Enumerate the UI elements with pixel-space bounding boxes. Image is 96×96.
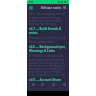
button[interactable]: Profile — [63, 6, 66, 9]
staticText: Settings — [60, 87, 68, 90]
staticText: We've been working hard on a new version… — [29, 12, 66, 25]
button[interactable]: Search — [38, 82, 47, 91]
button[interactable]: Settings — [59, 82, 68, 91]
button[interactable]: Library — [49, 82, 58, 91]
staticText: Improved sync reliability and faster sta… — [29, 36, 66, 43]
staticText: Home — [30, 87, 36, 90]
staticText: v2.6 — Background sync, Warnings & Links — [29, 45, 66, 53]
staticText: Library — [50, 87, 57, 90]
button[interactable]: Home — [28, 82, 37, 91]
staticText: v2.5 — Account Share — [29, 78, 62, 82]
staticText: Release notes — [41, 6, 61, 10]
staticText: v2.7 — Build Details & notes — [29, 27, 66, 35]
staticText: Search — [39, 87, 46, 90]
staticText: We rebuilt the background sync engine fr… — [29, 54, 66, 76]
button[interactable]: App logo — [29, 6, 33, 10]
